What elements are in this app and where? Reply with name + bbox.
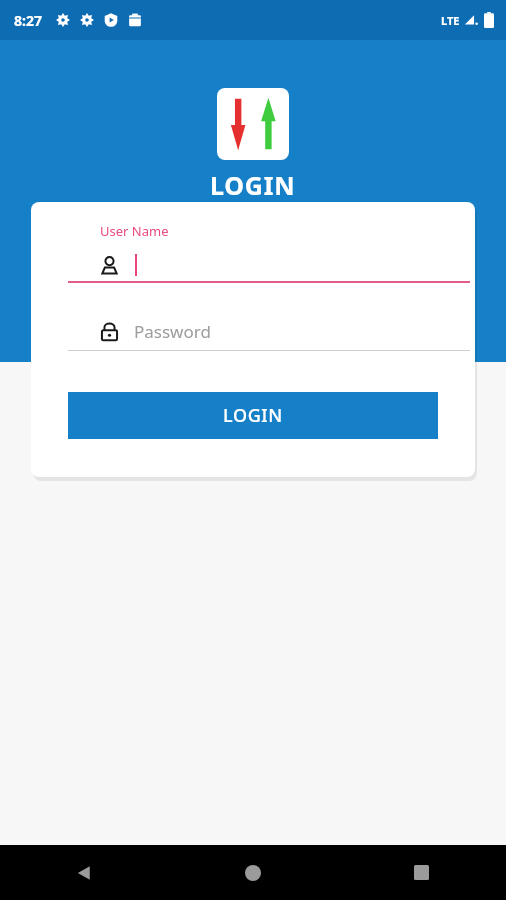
- staticText: User Name: [100, 222, 169, 240]
- staticText: Password: [134, 320, 211, 343]
- staticText: 8:27: [14, 11, 42, 30]
- staticText: LTE: [441, 13, 460, 28]
- button[interactable]: LOGIN: [68, 392, 438, 439]
- button[interactable]: Home: [168, 845, 337, 900]
- button[interactable]: Recent apps: [337, 845, 506, 900]
- staticText: LOGIN: [223, 403, 283, 428]
- button[interactable]: Back: [0, 845, 168, 900]
- staticText: LOGIN: [210, 168, 296, 202]
- button[interactable]: [68, 244, 470, 286]
- button[interactable]: Password: [68, 310, 470, 352]
